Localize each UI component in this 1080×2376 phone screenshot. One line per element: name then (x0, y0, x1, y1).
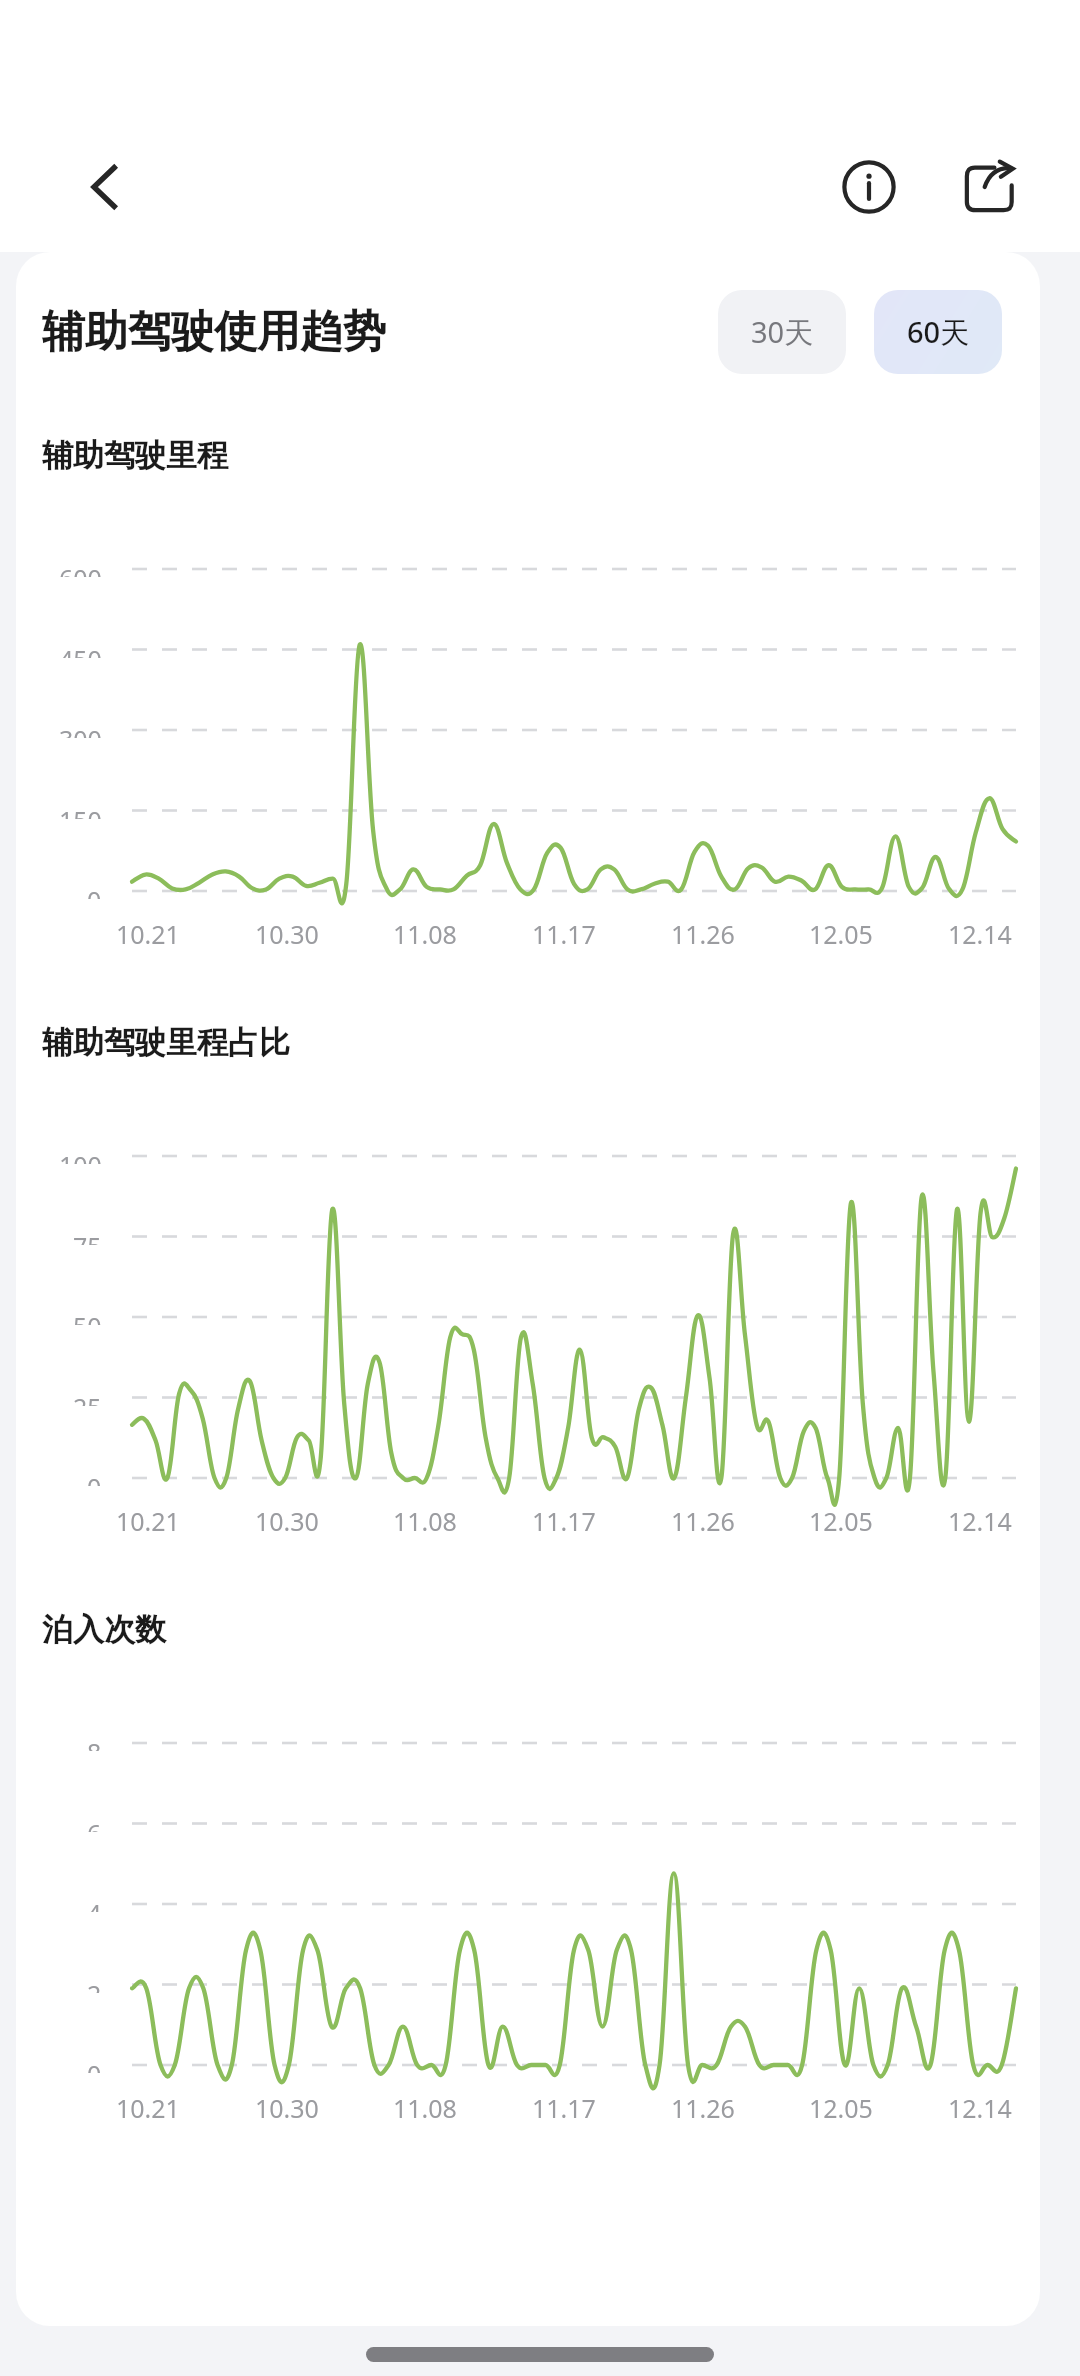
staticText: 30天 (751, 312, 814, 352)
staticText: 8 (87, 1735, 102, 1751)
staticText: 450 (59, 642, 102, 658)
staticText: 11.17 (532, 917, 596, 951)
staticText: 50 (73, 1309, 102, 1325)
staticText: 10.30 (255, 917, 319, 951)
staticText: 11.08 (393, 917, 457, 951)
button[interactable]: Back (58, 140, 152, 234)
staticText: 11.17 (532, 1504, 596, 1538)
button[interactable]: 60天 (874, 290, 1002, 374)
staticText: 12.14 (948, 917, 1012, 951)
staticText: 10.30 (255, 1504, 319, 1538)
staticText: 12.05 (809, 2091, 873, 2125)
staticText: 12.14 (948, 2091, 1012, 2125)
staticText: 0 (87, 883, 102, 899)
staticText: 10.30 (255, 2091, 319, 2125)
staticText: 100 (59, 1148, 102, 1164)
staticText: 25 (73, 1390, 102, 1406)
button[interactable]: Share (942, 140, 1036, 234)
staticText: 10.21 (116, 917, 180, 951)
staticText: 150 (59, 803, 102, 819)
button[interactable]: 30天 (718, 290, 846, 374)
staticText: 300 (59, 722, 102, 738)
staticText: 12.05 (809, 1504, 873, 1538)
staticText: 11.17 (532, 2091, 596, 2125)
staticText: 2 (87, 1977, 102, 1993)
staticText: 4 (87, 1896, 102, 1912)
staticText: 12.05 (809, 917, 873, 951)
staticText: 11.08 (393, 2091, 457, 2125)
staticText: 600 (59, 561, 102, 577)
staticText: 0 (87, 1470, 102, 1486)
staticText: 60天 (907, 312, 970, 352)
staticText: 辅助驾驶里程占比 (42, 1023, 290, 1062)
staticText: 10.21 (116, 1504, 180, 1538)
staticText: 辅助驾驶使用趋势 (42, 305, 386, 359)
staticText: 12.14 (948, 1504, 1012, 1538)
staticText: 0 (87, 2057, 102, 2073)
staticText: 辅助驾驶里程 (42, 436, 228, 475)
staticText: 泊入次数 (42, 1610, 166, 1649)
staticText: 6 (87, 1816, 102, 1832)
staticText: 75 (73, 1229, 102, 1245)
staticText: 10.21 (116, 2091, 180, 2125)
staticText: 11.26 (671, 2091, 735, 2125)
staticText: 11.26 (671, 917, 735, 951)
button[interactable]: Info (822, 140, 916, 234)
staticText: 11.26 (671, 1504, 735, 1538)
staticText: 11.08 (393, 1504, 457, 1538)
